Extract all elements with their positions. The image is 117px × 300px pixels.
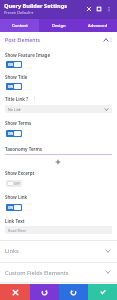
staticText: Advanced: [88, 23, 108, 29]
button[interactable]: Toggle on: [6, 204, 22, 211]
staticText: ?: [26, 96, 29, 102]
staticText: Query Builder Settings: [4, 2, 68, 10]
button[interactable]: Toggle off: [6, 180, 22, 187]
staticText: OFF: [14, 182, 21, 186]
staticText: ON: [8, 132, 14, 136]
staticText: Taxonomy Terms: [5, 146, 43, 152]
button[interactable]: Cancel: [0, 284, 30, 300]
button[interactable]: Toggle on: [6, 83, 22, 90]
button[interactable]: Content: [0, 19, 39, 32]
staticText: Show Feature Image: [5, 52, 51, 58]
button[interactable]: No Link: [5, 105, 112, 113]
button[interactable]: Field options: [31, 95, 38, 102]
staticText: Content: [12, 23, 28, 29]
button[interactable]: Design: [39, 19, 78, 32]
staticText: Show Link: [5, 194, 28, 200]
staticText: ON: [8, 63, 14, 67]
button[interactable]: Section options: [106, 35, 116, 45]
staticText: Preset: Default ▾: [4, 10, 34, 15]
button[interactable]: Save: [88, 284, 117, 300]
staticText: No Link: [8, 107, 21, 112]
button[interactable]: Custom Fields Elements: [0, 262, 117, 282]
staticText: Show Excerpt: [5, 170, 35, 176]
button[interactable]: Redo: [59, 284, 88, 300]
staticText: Design: [52, 23, 66, 29]
staticText: Links: [5, 247, 19, 255]
staticText: Post Elements: [5, 36, 41, 43]
button[interactable]: Undo: [30, 284, 59, 300]
button[interactable]: Add taxonomy term: [53, 157, 63, 167]
staticText: ON: [8, 85, 14, 89]
staticText: ON: [8, 206, 14, 210]
button[interactable]: Post Elements: [0, 33, 117, 44]
staticText: Custom Fields Elements: [5, 269, 69, 277]
button[interactable]: Toggle on: [6, 130, 22, 137]
button[interactable]: Toggle on: [6, 61, 22, 68]
staticText: Title Link: [5, 96, 25, 102]
staticText: Show Title: [5, 74, 28, 80]
staticText: Show Terms: [5, 120, 32, 126]
button[interactable]: More options: [104, 4, 114, 14]
button[interactable]: Links: [0, 240, 117, 262]
staticText: Read More: [8, 228, 27, 233]
staticText: Link Text: [5, 218, 25, 224]
button[interactable]: Collapse section: [101, 35, 111, 45]
button[interactable]: Close: [84, 4, 94, 14]
button[interactable]: Responsive preview: [94, 4, 104, 14]
button[interactable]: Advanced: [78, 19, 117, 32]
button[interactable]: Read More: [5, 226, 112, 234]
